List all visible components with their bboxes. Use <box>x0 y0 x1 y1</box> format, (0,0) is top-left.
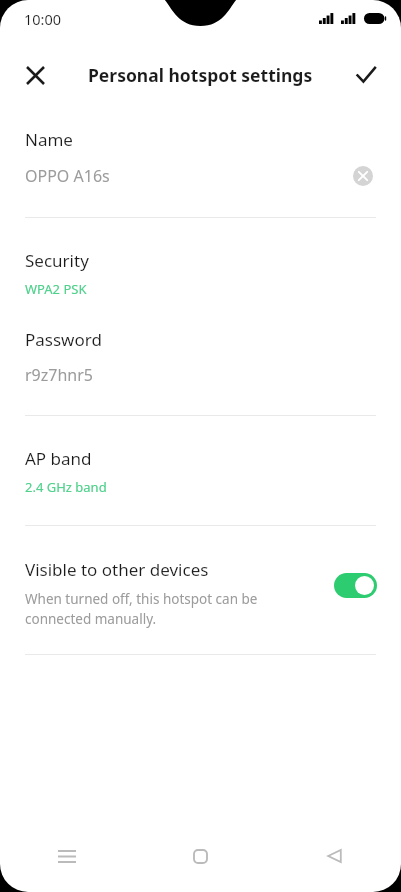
staticText: Name <box>25 128 73 151</box>
button[interactable]: Close <box>13 53 57 97</box>
staticText: Personal hotspot settings <box>88 63 313 87</box>
button[interactable]: Recent apps <box>0 820 133 892</box>
staticText: Security <box>25 249 89 272</box>
staticText: 10:00 <box>24 9 62 29</box>
button[interactable]: Toggle visibility <box>334 573 377 598</box>
staticText: When turned off, this hotspot can be con… <box>25 590 322 628</box>
button[interactable]: Password <box>0 328 401 415</box>
button[interactable]: AP band <box>0 416 401 525</box>
staticText: WPA2 PSK <box>25 280 87 298</box>
staticText: OPPO A16s <box>25 165 350 187</box>
button[interactable]: Visible to other devices <box>0 526 401 654</box>
button[interactable]: Home <box>133 820 267 892</box>
button[interactable]: Name <box>0 104 401 217</box>
button[interactable]: Clear name <box>350 163 376 189</box>
staticText: AP band <box>25 447 92 470</box>
staticText: 2.4 GHz band <box>25 478 107 496</box>
button[interactable]: Security <box>0 218 401 328</box>
staticText: Visible to other devices <box>25 558 209 581</box>
button[interactable]: Confirm <box>344 53 388 97</box>
staticText: r9z7hnr5 <box>25 364 93 386</box>
staticText: Password <box>25 328 102 351</box>
button[interactable]: Back <box>267 820 401 892</box>
